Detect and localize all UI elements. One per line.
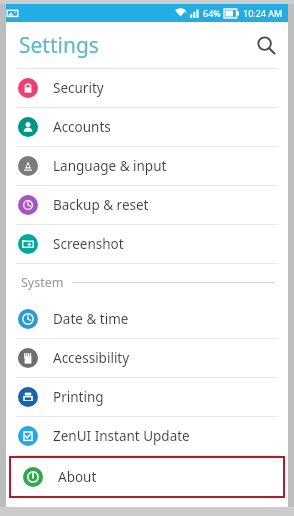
staticText: Date & time xyxy=(53,310,129,328)
staticText: Security xyxy=(53,79,104,97)
staticText: Printing xyxy=(53,388,104,406)
staticText: Language & input xyxy=(53,157,167,175)
staticText: Accounts xyxy=(53,118,111,136)
staticText: Accessibility xyxy=(53,349,130,367)
staticText: Screenshot xyxy=(53,235,124,253)
button[interactable]: Date & time xyxy=(6,300,288,338)
button[interactable]: Backup & reset xyxy=(6,186,288,224)
button[interactable]: ZenUI Instant Update xyxy=(6,417,288,455)
staticText: About xyxy=(58,468,97,486)
staticText: ZenUI Instant Update xyxy=(53,427,190,445)
button[interactable]: Accessibility xyxy=(6,339,288,377)
staticText: System xyxy=(21,274,64,291)
button[interactable]: Language & input xyxy=(6,147,288,185)
button[interactable]: Printing xyxy=(6,378,288,416)
button[interactable]: Accounts xyxy=(6,108,288,146)
staticText: Backup & reset xyxy=(53,196,149,214)
button[interactable]: About xyxy=(11,458,283,496)
button[interactable]: Screenshot xyxy=(6,225,288,263)
staticText: 64% xyxy=(203,7,221,19)
staticText: 10:24 AM xyxy=(243,7,283,19)
button[interactable]: Search xyxy=(244,23,288,67)
staticText: Settings xyxy=(19,31,99,60)
button[interactable]: Security xyxy=(6,69,288,107)
